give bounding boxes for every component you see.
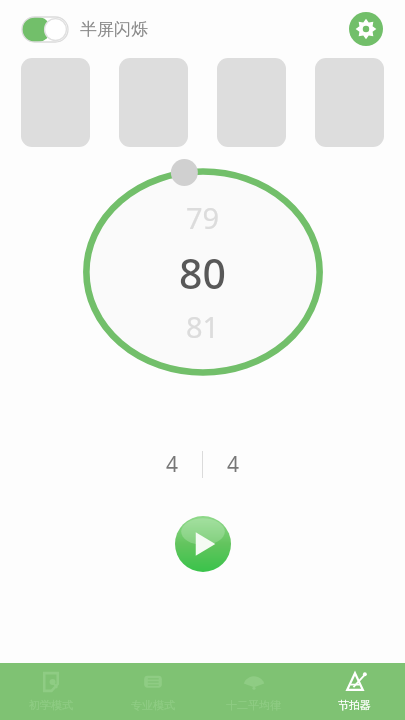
staticText: 81 — [186, 307, 220, 346]
button[interactable]: Beat 1 — [21, 58, 90, 147]
button[interactable]: 专业模式 — [102, 663, 203, 720]
button[interactable]: Settings — [349, 12, 383, 46]
staticText: 专业模式 — [131, 698, 175, 712]
button[interactable]: 节拍器 — [304, 663, 405, 720]
staticText: 80 — [179, 245, 226, 301]
button[interactable]: Half-screen flash toggle — [22, 17, 148, 42]
staticText: 4 — [166, 450, 179, 479]
staticText: 半屏闪烁 — [80, 19, 148, 40]
button[interactable]: Beat 4 — [315, 58, 384, 147]
button[interactable]: 十二平均律 — [203, 663, 304, 720]
staticText: 节拍器 — [338, 698, 371, 712]
staticText: 79 — [186, 198, 220, 237]
staticText: 十二平均律 — [226, 698, 281, 712]
staticText: 初学模式 — [29, 698, 73, 712]
button[interactable]: 4 — [142, 447, 202, 481]
button[interactable]: Beat 3 — [217, 58, 286, 147]
button[interactable]: 初学模式 — [0, 663, 102, 720]
button[interactable]: Beat 2 — [119, 58, 188, 147]
button[interactable]: 4 — [203, 447, 263, 481]
button[interactable]: Play — [175, 516, 231, 572]
staticText: 4 — [227, 450, 240, 479]
